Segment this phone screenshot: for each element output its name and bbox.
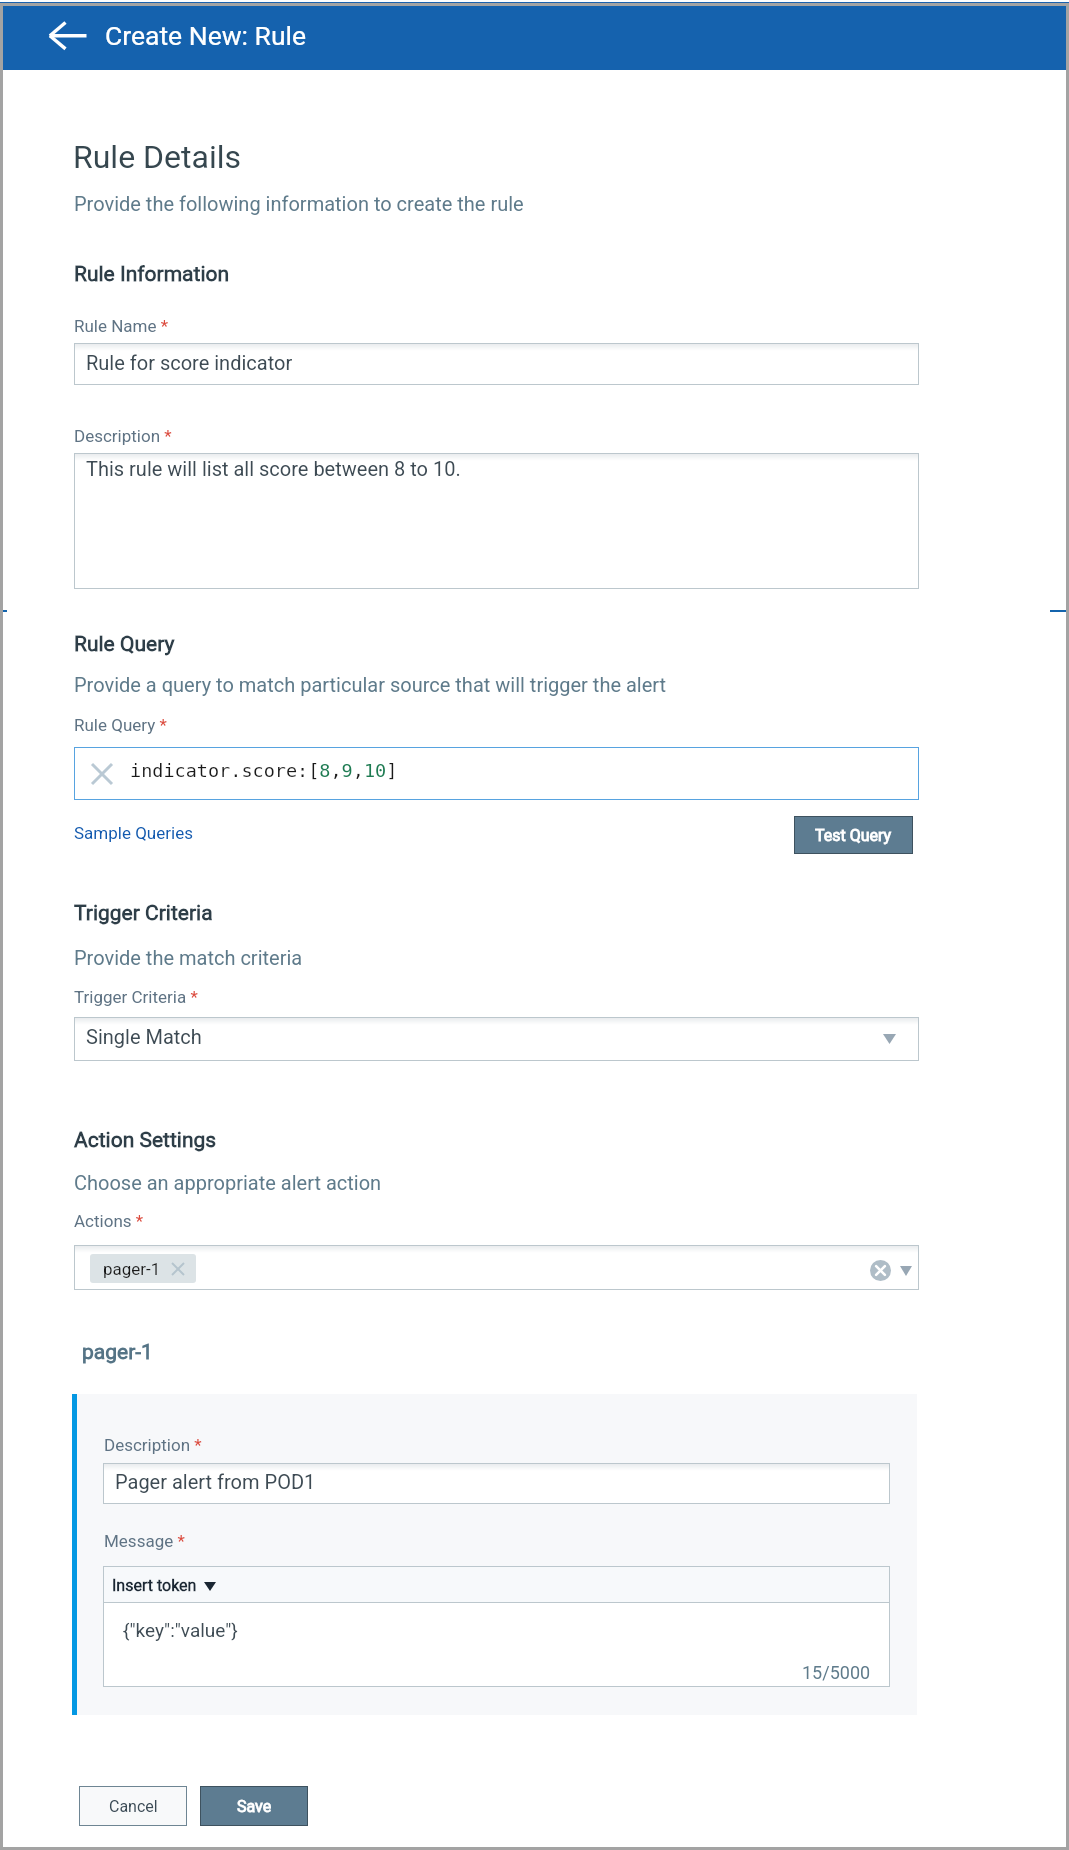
staticText: Rule Information	[74, 262, 230, 287]
staticText: {"key":"value"}	[123, 1619, 238, 1641]
staticText: 15/5000	[802, 1662, 871, 1683]
button[interactable]: Sample Queries	[74, 823, 193, 843]
staticText: Provide a query to match particular sour…	[74, 673, 667, 696]
staticText: Provide the following information to cre…	[74, 192, 524, 215]
staticText: pager-1	[82, 1340, 153, 1365]
staticText: pager-1	[103, 1259, 161, 1279]
staticText: Trigger Criteria *	[74, 987, 198, 1007]
staticText: This rule will list all score between 8 …	[86, 457, 461, 480]
staticText: Description *	[104, 1435, 202, 1455]
staticText: Trigger Criteria	[74, 901, 213, 926]
staticText: Rule Name *	[74, 316, 169, 336]
staticText: Actions *	[74, 1211, 144, 1231]
button[interactable]	[103, 1566, 890, 1687]
staticText: Choose an appropriate alert action	[74, 1171, 382, 1194]
button[interactable]	[103, 1463, 890, 1504]
staticText: Rule Query	[74, 632, 175, 657]
staticText: Rule for score indicator	[86, 351, 293, 374]
staticText: Create New: Rule	[105, 20, 307, 51]
button[interactable]	[74, 453, 919, 589]
staticText: Pager alert from POD1	[115, 1470, 316, 1493]
button[interactable]	[74, 1017, 919, 1061]
staticText: Cancel	[109, 1797, 158, 1816]
staticText: Provide the match criteria	[74, 946, 303, 969]
staticText: Rule Query *	[74, 715, 167, 735]
staticText: Rule Details	[73, 138, 241, 176]
staticText: Description *	[74, 426, 172, 446]
staticText: Insert token	[112, 1576, 197, 1595]
button[interactable]	[74, 747, 919, 800]
staticText: Action Settings	[74, 1128, 217, 1153]
staticText: Sample Queries	[74, 823, 193, 843]
button[interactable]: Back	[36, 12, 98, 62]
button[interactable]	[74, 1245, 919, 1290]
button[interactable]: pager-1	[90, 1254, 196, 1283]
staticText: Single Match	[86, 1025, 202, 1048]
button[interactable]: Cancel	[79, 1786, 187, 1826]
staticText: Test Query	[815, 826, 892, 845]
staticText: Message *	[104, 1531, 185, 1551]
button[interactable]: Test Query	[794, 816, 913, 854]
staticText: Save	[237, 1797, 272, 1816]
button[interactable]	[74, 343, 919, 385]
staticText: indicator.score:[8,9,10]	[130, 760, 398, 782]
button[interactable]: Save	[200, 1786, 308, 1826]
